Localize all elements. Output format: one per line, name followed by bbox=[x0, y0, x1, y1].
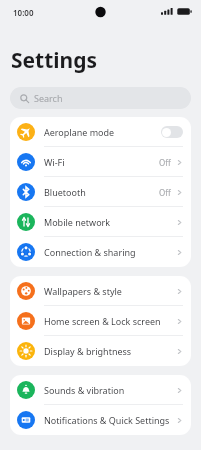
button[interactable]: Home screen & Lock screen bbox=[10, 306, 191, 336]
button[interactable]: Sounds & vibration bbox=[10, 375, 191, 405]
button[interactable]: Display & brightness bbox=[10, 336, 191, 366]
staticText: Connection & sharing bbox=[44, 246, 176, 258]
button[interactable]: Aeroplane mode bbox=[10, 117, 191, 147]
staticText: Mobile network bbox=[44, 216, 176, 228]
staticText: 10:00 bbox=[13, 7, 34, 18]
staticText: Display & brightness bbox=[44, 345, 176, 357]
staticText: Bluetooth bbox=[44, 186, 159, 198]
button[interactable]: Search bbox=[10, 87, 191, 109]
button[interactable]: Bluetooth bbox=[10, 177, 191, 207]
button[interactable]: Notifications & Quick Settings bbox=[10, 405, 191, 435]
button[interactable]: Wi-Fi bbox=[10, 147, 191, 177]
button[interactable]: Connection & sharing bbox=[10, 237, 191, 267]
staticText: Search bbox=[34, 92, 63, 104]
staticText: Sounds & vibration bbox=[44, 384, 176, 396]
staticText: Aeroplane mode bbox=[44, 126, 161, 138]
staticText: Wallpapers & style bbox=[44, 285, 176, 297]
staticText: Off bbox=[159, 157, 171, 168]
staticText: Wi-Fi bbox=[44, 156, 159, 168]
staticText: Settings bbox=[11, 46, 98, 75]
button[interactable]: Aeroplane mode toggle bbox=[161, 126, 183, 138]
staticText: Home screen & Lock screen bbox=[44, 315, 176, 327]
staticText: Off bbox=[159, 187, 171, 198]
button[interactable]: Mobile network bbox=[10, 207, 191, 237]
button[interactable]: Wallpapers & style bbox=[10, 276, 191, 306]
staticText: Notifications & Quick Settings bbox=[44, 414, 176, 426]
